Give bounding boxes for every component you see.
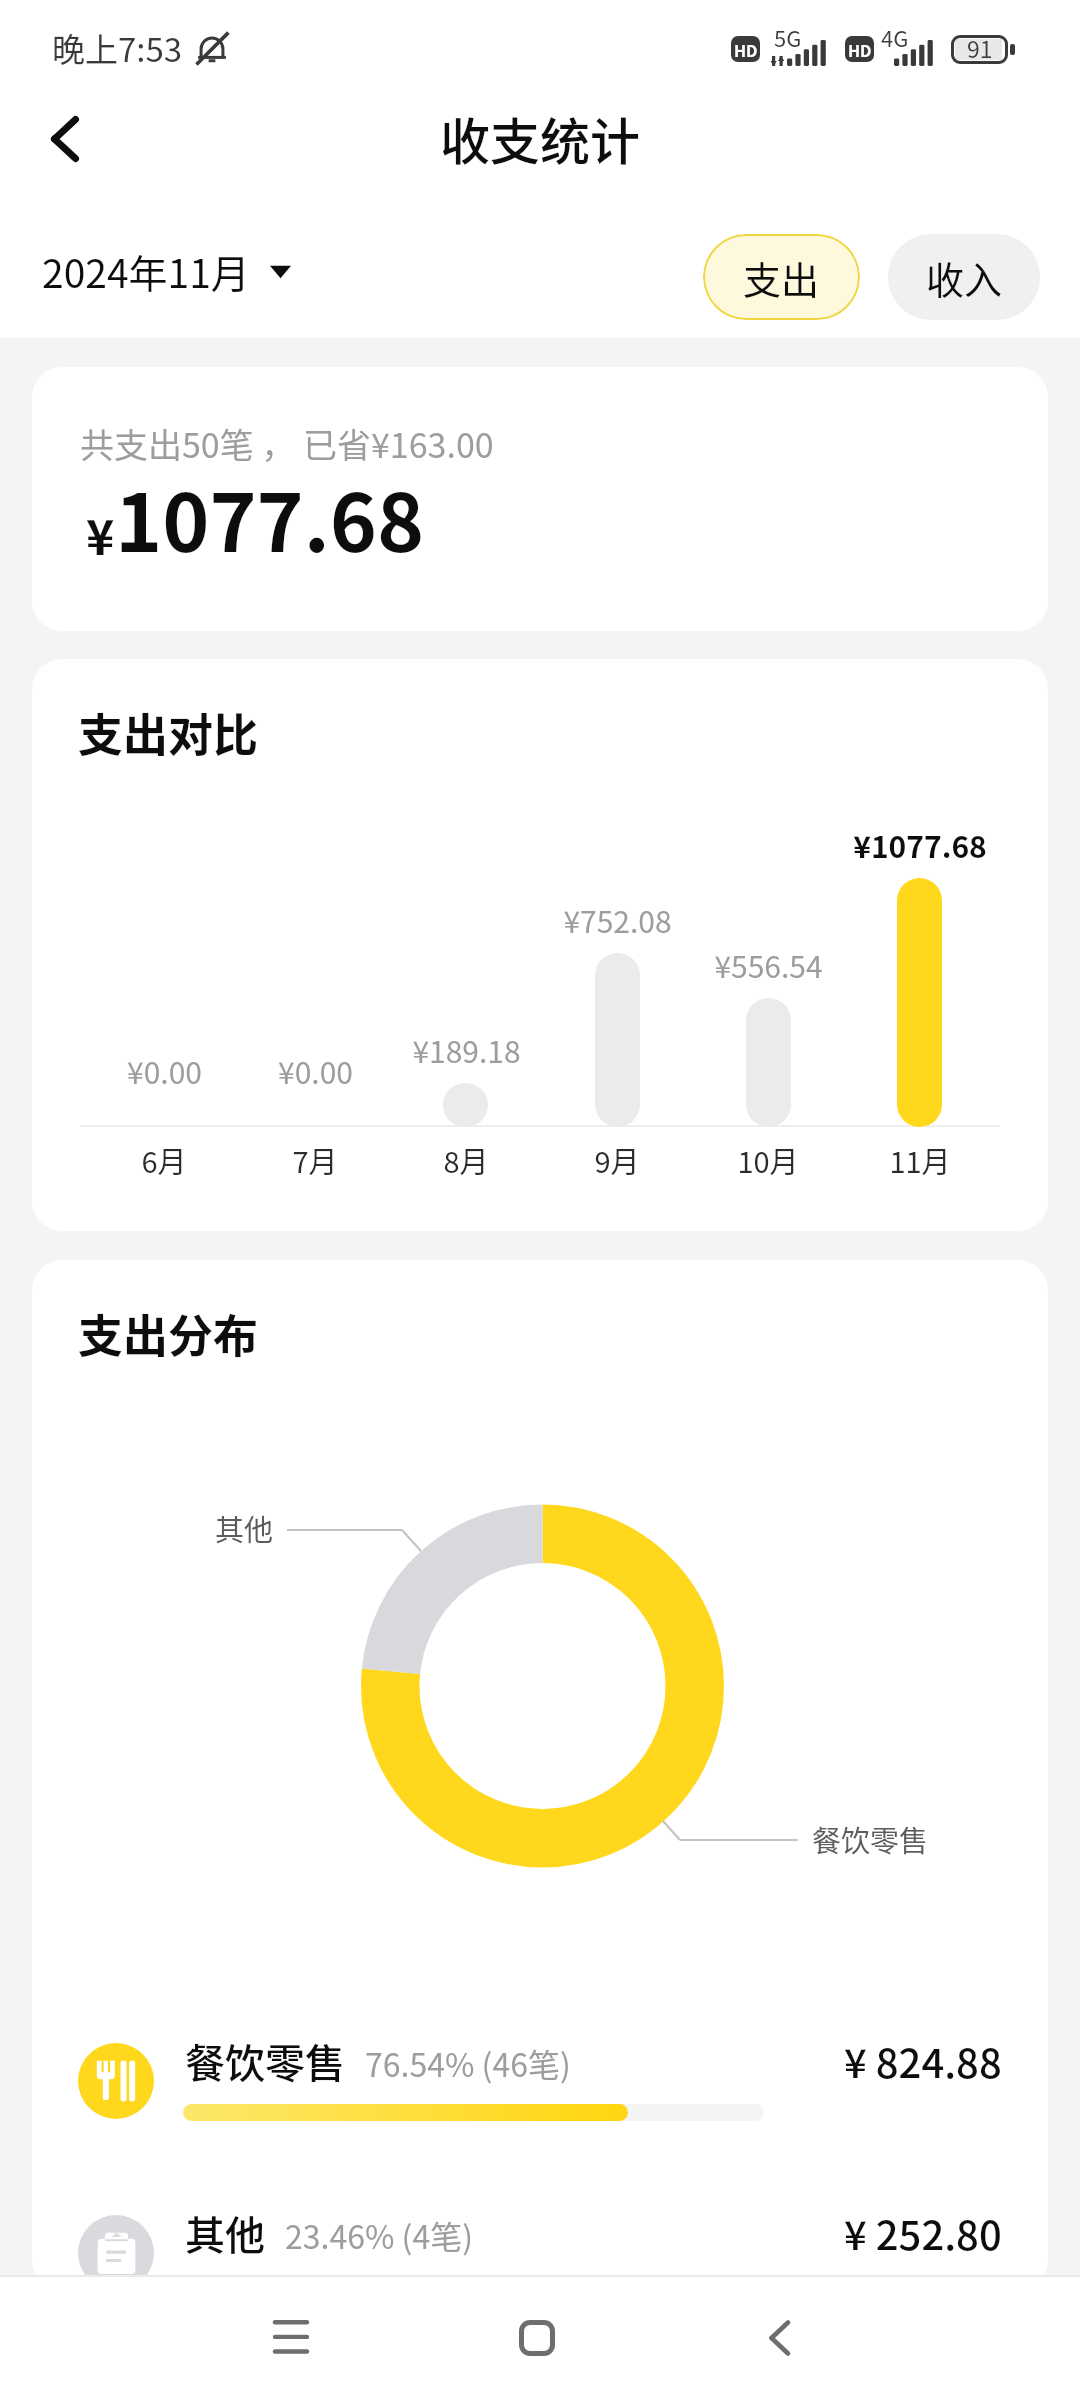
staticText: 5G <box>774 21 802 53</box>
staticText: 91 <box>967 31 993 60</box>
staticText: 1077.68 <box>115 459 425 575</box>
button[interactable]: 收入 <box>888 234 1040 320</box>
staticText: ¥0.00 <box>127 1049 202 1092</box>
staticText: 共支出50笔 ， 已省¥163.00 <box>80 419 494 468</box>
staticText: 支出 <box>743 250 820 305</box>
button[interactable]: 其他 <box>32 2193 1048 2290</box>
button[interactable]: 选择月份 2024年11月 <box>42 243 291 299</box>
staticText: 23.46% (4笔) <box>285 2212 473 2258</box>
staticText: 支出对比 <box>78 700 259 765</box>
staticText: HD <box>848 38 872 61</box>
staticText: 其他 <box>215 1507 274 1549</box>
staticText: 其他 <box>185 2204 265 2262</box>
staticText: ¥0.00 <box>278 1049 353 1092</box>
button[interactable]: 最近任务 <box>231 2278 351 2398</box>
staticText: ¥752.08 <box>563 898 672 941</box>
staticText: 6月 <box>141 1139 187 1181</box>
staticText: 9月 <box>594 1139 640 1181</box>
button[interactable]: 返回 <box>27 101 103 177</box>
staticText: 餐饮零售 <box>185 2032 345 2090</box>
staticText: ¥556.54 <box>714 943 823 986</box>
staticText: ¥189.18 <box>412 1028 521 1071</box>
button[interactable]: 主页 <box>477 2278 597 2398</box>
staticText: 76.54% (46笔) <box>365 2040 571 2086</box>
staticText: 10月 <box>737 1139 799 1181</box>
button[interactable]: 餐饮零售 <box>32 2021 1048 2141</box>
staticText: 支出分布 <box>78 1301 259 1366</box>
button[interactable]: 支出 <box>703 234 860 320</box>
button[interactable]: 返回 <box>720 2278 840 2398</box>
staticText: 11月 <box>889 1139 951 1181</box>
staticText: ¥ 824.88 <box>844 2032 1002 2090</box>
staticText: 餐饮零售 <box>812 1818 929 1860</box>
staticText: ¥ 252.80 <box>844 2204 1002 2262</box>
staticText: 2024年11月 <box>42 243 250 299</box>
staticText: 7月 <box>292 1139 338 1181</box>
staticText: 晚上7:53 <box>52 24 183 72</box>
staticText: ¥ <box>86 499 115 569</box>
staticText: 收支统计 <box>440 102 640 174</box>
staticText: 4G <box>881 21 909 53</box>
staticText: 8月 <box>443 1139 489 1181</box>
staticText: HD <box>734 38 758 61</box>
staticText: 收入 <box>926 250 1003 305</box>
staticText: ¥1077.68 <box>853 823 987 866</box>
